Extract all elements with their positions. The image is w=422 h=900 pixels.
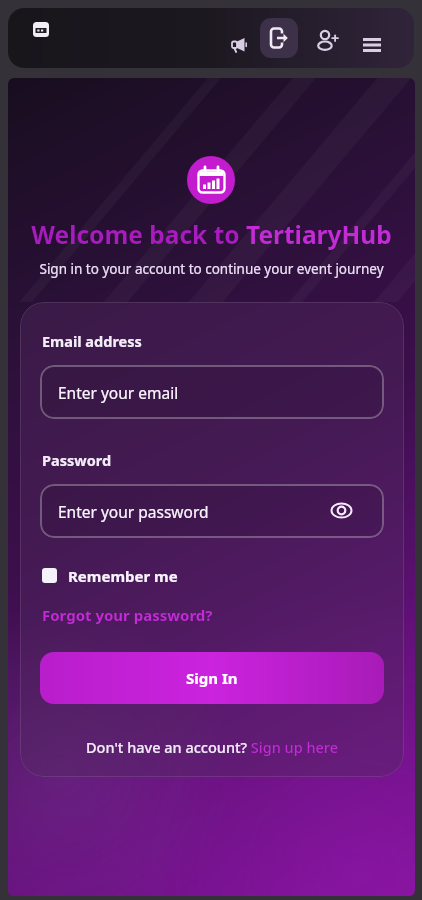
staticText: Remember me [68, 566, 178, 586]
button[interactable] [356, 31, 388, 59]
button[interactable]: Remember me [42, 564, 202, 588]
staticText: Welcome back to TertiaryHub [8, 218, 415, 251]
button[interactable]: Forgot your password? [42, 605, 213, 625]
button[interactable]: Enter your password [40, 484, 384, 538]
button[interactable] [230, 36, 248, 54]
staticText: Sign in to your account to continue your… [8, 260, 415, 278]
button[interactable]: Don't have an account? Sign up here [20, 737, 404, 757]
staticText: Email address [42, 331, 142, 351]
button[interactable] [260, 18, 298, 58]
staticText: Enter your password [58, 501, 209, 522]
staticText: Enter your email [58, 382, 179, 403]
button[interactable]: Enter your email [40, 365, 384, 419]
button[interactable]: Sign In [40, 652, 384, 704]
button[interactable] [28, 16, 54, 42]
staticText: Sign In [186, 668, 238, 688]
staticText: Password [42, 450, 112, 470]
button[interactable] [315, 27, 343, 55]
